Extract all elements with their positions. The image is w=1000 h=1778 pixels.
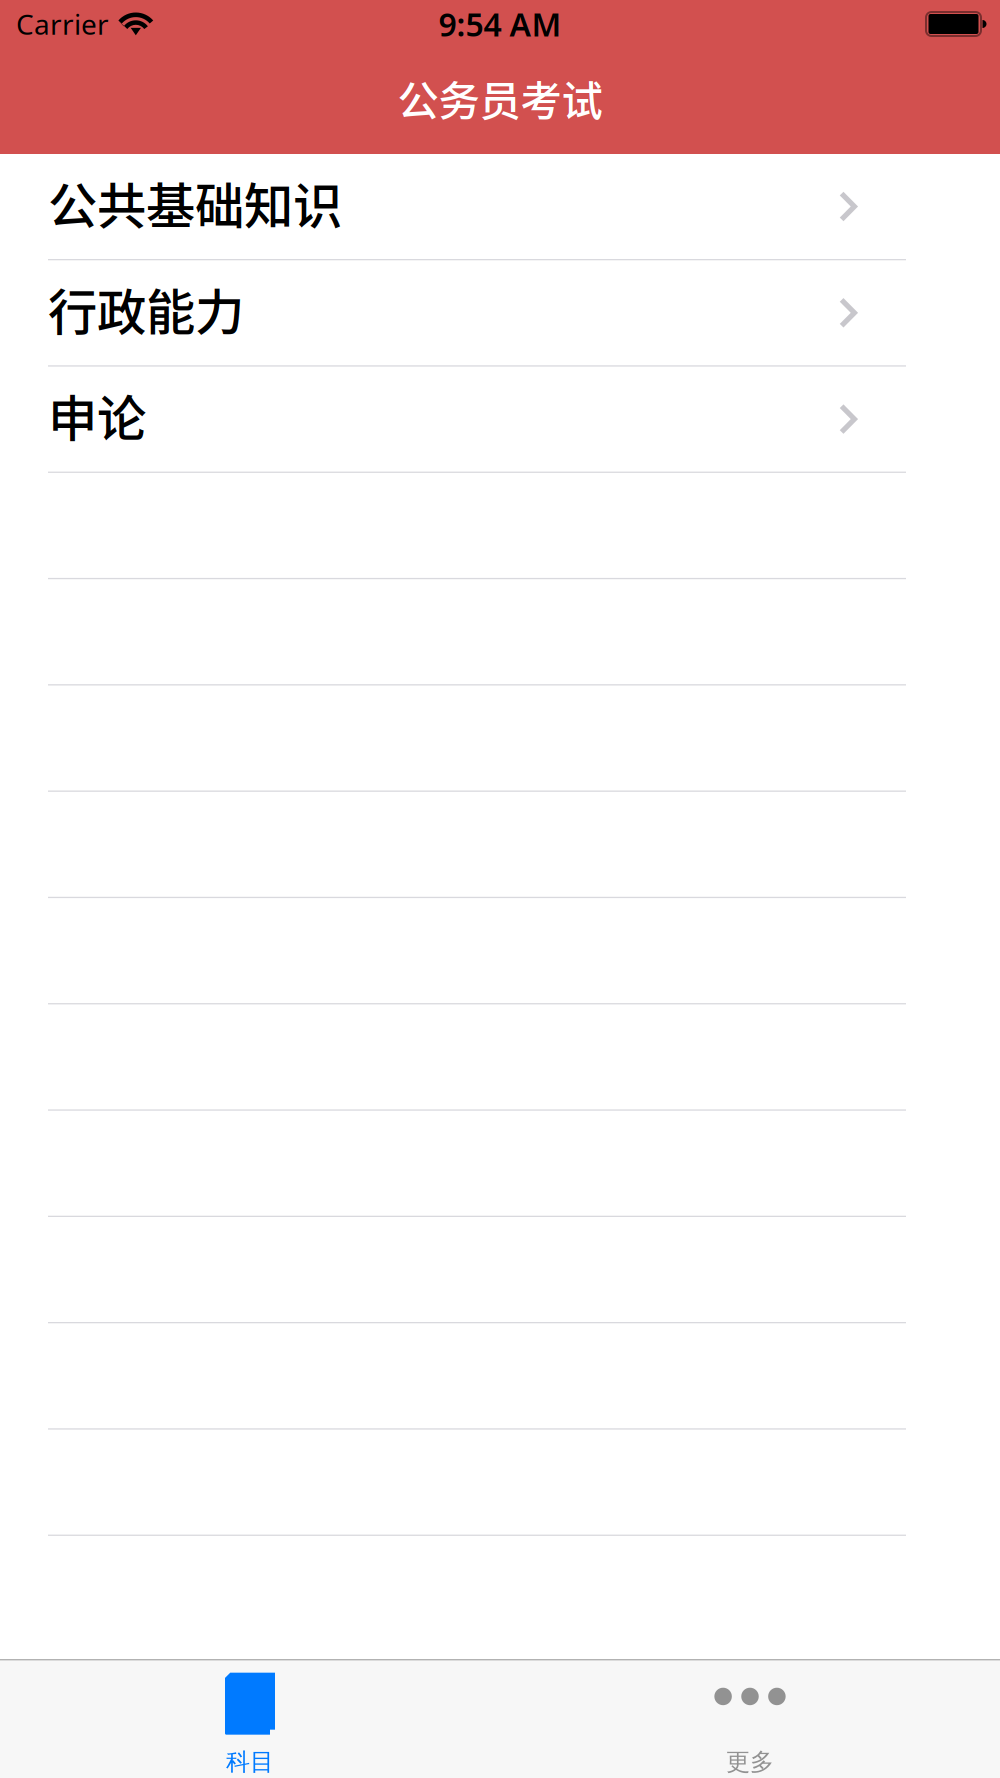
button[interactable]: 更多 <box>500 1660 1000 1778</box>
staticText: 行政能力 <box>48 273 244 344</box>
staticText: 申论 <box>48 379 146 451</box>
button[interactable]: 行政能力 <box>0 260 1000 367</box>
button[interactable]: 申论 <box>0 367 1000 473</box>
button[interactable]: 科目 <box>0 1660 500 1778</box>
staticText: 公务员考试 <box>397 68 602 128</box>
staticText: 9:54 AM <box>438 3 561 45</box>
staticText: 科目 <box>226 1747 274 1777</box>
staticText: Carrier <box>16 5 109 43</box>
staticText: 更多 <box>726 1747 774 1777</box>
staticText: 公共基础知识 <box>48 167 342 238</box>
button[interactable]: 公共基础知识 <box>0 154 1000 260</box>
